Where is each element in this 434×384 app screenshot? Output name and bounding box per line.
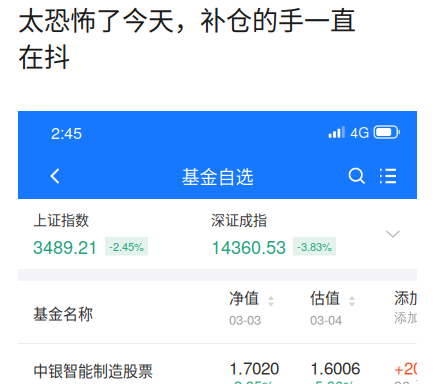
staticText: 4G	[350, 122, 369, 142]
staticText: 1.6006	[310, 355, 360, 379]
button[interactable]: Expand indexes	[375, 212, 411, 256]
staticText: 86 天	[394, 375, 428, 384]
staticText: -2.45%	[109, 238, 144, 254]
staticText: 03-04	[310, 310, 342, 328]
staticText: 中银智能制造股票	[33, 359, 153, 381]
staticText: +20.71%	[394, 355, 434, 379]
staticText: 太恐怖了今天，补仓的手一直 在抖	[18, 0, 356, 74]
staticText: 估值	[310, 286, 340, 308]
staticText: 添加	[394, 310, 420, 326]
staticText: 基金名称	[33, 302, 93, 324]
staticText: 2:45	[51, 120, 82, 143]
staticText: 3489.21	[33, 233, 98, 259]
staticText: 03-03	[229, 310, 261, 328]
staticText: 添加	[394, 286, 424, 308]
button[interactable]: 中银智能制造股票	[18, 344, 417, 384]
staticText: -3.83%	[297, 238, 332, 254]
staticText: 基金自选	[181, 163, 253, 189]
staticText: -5.96%	[310, 375, 355, 384]
button[interactable]: Back	[37, 153, 73, 199]
staticText: -2.35%	[229, 375, 274, 384]
staticText: 净值	[229, 286, 259, 308]
staticText: 14360.53	[211, 233, 286, 259]
button[interactable]: Search	[342, 153, 372, 199]
staticText: 1.7020	[229, 355, 279, 379]
staticText: 深证成指	[211, 209, 267, 229]
staticText: 上证指数	[33, 209, 89, 229]
button[interactable]: Watchlist	[372, 153, 404, 199]
